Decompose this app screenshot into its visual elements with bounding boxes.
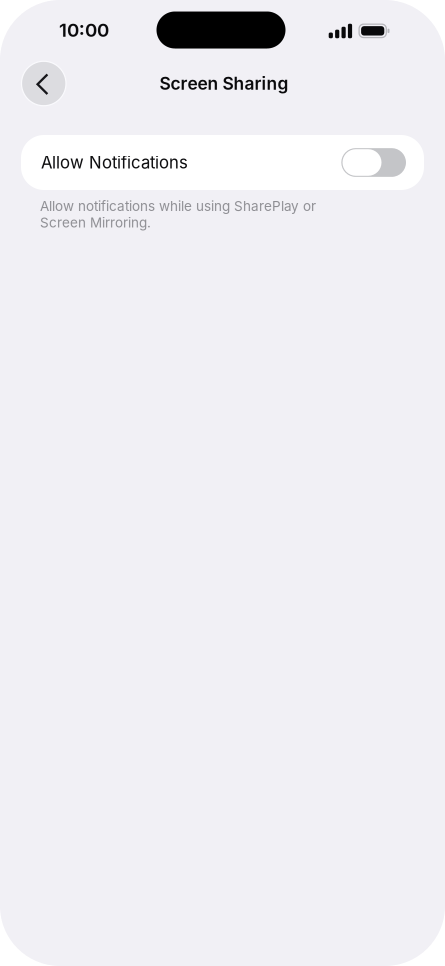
button[interactable]: Allow Notifications	[21, 135, 424, 190]
staticText: Allow Notifications	[41, 152, 188, 173]
staticText: 10:00	[59, 19, 109, 41]
staticText: Allow notifications while using SharePla…	[40, 198, 316, 214]
staticText: Screen Mirroring.	[40, 214, 151, 231]
staticText: Screen Sharing	[159, 73, 288, 94]
button[interactable]: Back	[21, 61, 66, 106]
